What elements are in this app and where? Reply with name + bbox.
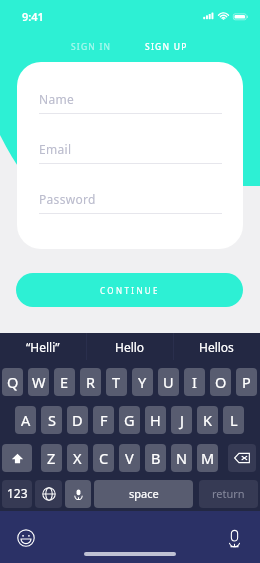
button[interactable]: W <box>28 368 49 396</box>
button[interactable]: SIGN IN <box>64 38 118 55</box>
staticText: G <box>124 410 135 430</box>
button[interactable]: L <box>223 406 244 434</box>
button[interactable]: R <box>80 368 101 396</box>
button[interactable]: SIGN UP <box>139 38 193 55</box>
button[interactable]: N <box>171 444 192 472</box>
staticText: U <box>163 372 174 392</box>
button[interactable]: Y <box>132 368 153 396</box>
staticText: O <box>215 372 227 392</box>
staticText: R <box>86 372 96 392</box>
staticText: X <box>73 448 82 468</box>
button[interactable]: Voice input <box>224 528 244 548</box>
button[interactable]: A <box>15 406 36 434</box>
button[interactable]: Z <box>41 444 62 472</box>
button[interactable]: Hellos <box>173 333 260 360</box>
staticText: F <box>100 410 108 430</box>
button[interactable]: Emoji <box>17 529 35 547</box>
button[interactable]: F <box>93 406 114 434</box>
staticText: SIGN UP <box>145 41 188 53</box>
staticText: J <box>180 410 184 430</box>
staticText: I <box>192 372 197 392</box>
button[interactable]: O <box>210 368 231 396</box>
staticText: K <box>203 410 212 430</box>
button[interactable]: B <box>145 444 166 472</box>
button[interactable]: Shift <box>2 444 32 472</box>
button[interactable]: P <box>236 368 257 396</box>
button[interactable]: U <box>158 368 179 396</box>
staticText: C <box>99 448 109 468</box>
button[interactable]: CONTINUE <box>16 273 243 307</box>
staticText: B <box>151 448 161 468</box>
staticText: SIGN IN <box>71 41 112 53</box>
staticText: H <box>150 410 161 430</box>
button[interactable]: H <box>145 406 166 434</box>
staticText: D <box>72 410 83 430</box>
staticText: Z <box>47 448 56 468</box>
button[interactable]: Hello <box>86 333 173 360</box>
button[interactable]: Backspace <box>228 444 256 472</box>
staticText: V <box>125 448 134 468</box>
button[interactable]: T <box>106 368 127 396</box>
staticText: Hello <box>115 339 145 355</box>
staticText: A <box>21 410 31 430</box>
staticText: return <box>212 486 245 501</box>
staticText: space <box>129 486 159 501</box>
staticText: Q <box>7 372 19 392</box>
staticText: 9:41 <box>22 9 44 24</box>
button[interactable]: I <box>184 368 205 396</box>
button[interactable]: D <box>67 406 88 434</box>
button[interactable]: Q <box>2 368 23 396</box>
button[interactable]: Voice input <box>65 480 91 508</box>
staticText: Email <box>39 141 72 157</box>
button[interactable]: E <box>54 368 75 396</box>
staticText: Hellos <box>199 339 234 355</box>
button[interactable]: Change language <box>35 480 62 508</box>
button[interactable]: Email <box>39 142 222 164</box>
button[interactable]: return <box>199 480 258 508</box>
button[interactable]: J <box>171 406 192 434</box>
staticText: E <box>60 372 69 392</box>
staticText: M <box>201 448 215 468</box>
staticText: CONTINUE <box>100 285 160 296</box>
button[interactable]: G <box>119 406 140 434</box>
staticText: P <box>242 372 251 392</box>
button[interactable]: S <box>41 406 62 434</box>
button[interactable]: “Helli” <box>0 333 86 360</box>
staticText: Y <box>138 372 147 392</box>
staticText: T <box>112 372 121 392</box>
button[interactable]: C <box>93 444 114 472</box>
staticText: W <box>32 372 46 392</box>
staticText: N <box>176 448 188 468</box>
button[interactable]: Password <box>39 192 222 214</box>
staticText: S <box>48 410 56 430</box>
staticText: Name <box>39 91 75 107</box>
button[interactable]: K <box>197 406 218 434</box>
staticText: “Helli” <box>26 339 60 355</box>
staticText: 123 <box>7 485 28 501</box>
button[interactable]: 123 <box>2 480 32 508</box>
button[interactable]: V <box>119 444 140 472</box>
button[interactable]: Name <box>39 92 222 114</box>
button[interactable]: M <box>197 444 218 472</box>
staticText: Password <box>39 191 96 207</box>
staticText: L <box>230 410 238 430</box>
button[interactable]: X <box>67 444 88 472</box>
button[interactable]: space <box>94 480 193 508</box>
